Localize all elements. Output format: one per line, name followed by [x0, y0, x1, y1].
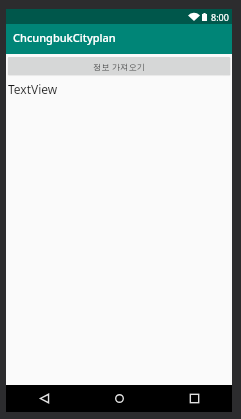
staticText: 정보 가져오기: [93, 61, 145, 72]
button[interactable]: Home: [82, 385, 157, 412]
staticText: 8:00: [211, 11, 229, 23]
button[interactable]: Recents: [157, 385, 232, 412]
staticText: ChcungbukCityplan: [13, 30, 116, 45]
button[interactable]: 정보 가져오기: [8, 57, 230, 75]
staticText: TextView: [8, 81, 58, 97]
button[interactable]: Back: [6, 385, 82, 412]
